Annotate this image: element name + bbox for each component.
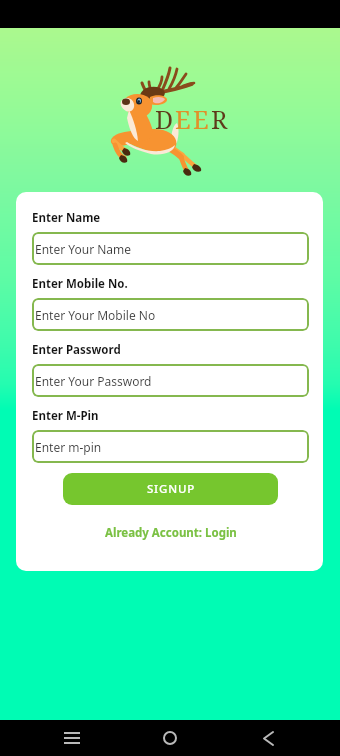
button[interactable]: Recent apps <box>52 720 92 756</box>
staticText: Already Account: Login <box>105 525 237 541</box>
button[interactable]: Enter m-pin <box>32 430 309 463</box>
button[interactable]: SIGNUP <box>63 473 278 505</box>
staticText: Enter Your Mobile No <box>35 307 156 323</box>
staticText: Enter Your Name <box>35 241 132 257</box>
button[interactable]: Enter Your Password <box>32 364 309 397</box>
staticText: D <box>155 102 175 136</box>
button[interactable]: Already Account: Login <box>101 521 241 545</box>
staticText: Enter Your Password <box>35 373 152 389</box>
button[interactable]: Enter Your Mobile No <box>32 298 309 331</box>
staticText: Enter Password <box>32 342 121 358</box>
staticText: E <box>175 102 193 136</box>
button[interactable]: Home <box>150 720 190 756</box>
button[interactable]: Back <box>248 720 288 756</box>
staticText: E <box>193 102 211 136</box>
staticText: Enter m-pin <box>35 439 102 455</box>
button[interactable]: Enter Your Name <box>32 232 309 265</box>
staticText: Enter Mobile No. <box>32 276 128 292</box>
staticText: Enter M-Pin <box>32 408 99 424</box>
staticText: SIGNUP <box>147 481 195 497</box>
staticText: R <box>211 102 230 136</box>
staticText: Enter Name <box>32 210 101 226</box>
